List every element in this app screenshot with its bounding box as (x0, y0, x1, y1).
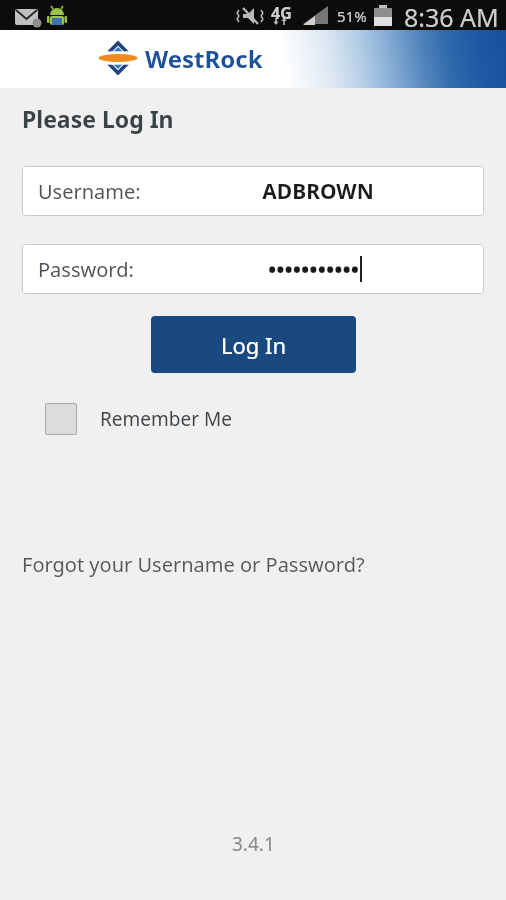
staticText: ADBROWN (152, 177, 484, 206)
staticText: Remember Me (100, 406, 232, 432)
staticText: 8:36 AM (404, 0, 499, 30)
staticText: 51% (337, 6, 367, 26)
staticText: ••••••••••• (268, 254, 359, 284)
staticText: Username: (38, 178, 141, 205)
staticText: 4G (271, 2, 292, 24)
button[interactable]: Forgot your Username or Password? (22, 551, 365, 578)
button[interactable]: Log In (151, 316, 356, 373)
staticText: Please Log In (22, 103, 174, 134)
button[interactable]: Username: (22, 166, 484, 216)
staticText: WestRock (145, 42, 263, 75)
button[interactable]: Password: (22, 244, 484, 294)
staticText: 3.4.1 (232, 831, 275, 857)
staticText: Password: (38, 256, 134, 283)
button[interactable]: Remember Me (45, 403, 232, 435)
staticText: Log In (221, 330, 287, 360)
